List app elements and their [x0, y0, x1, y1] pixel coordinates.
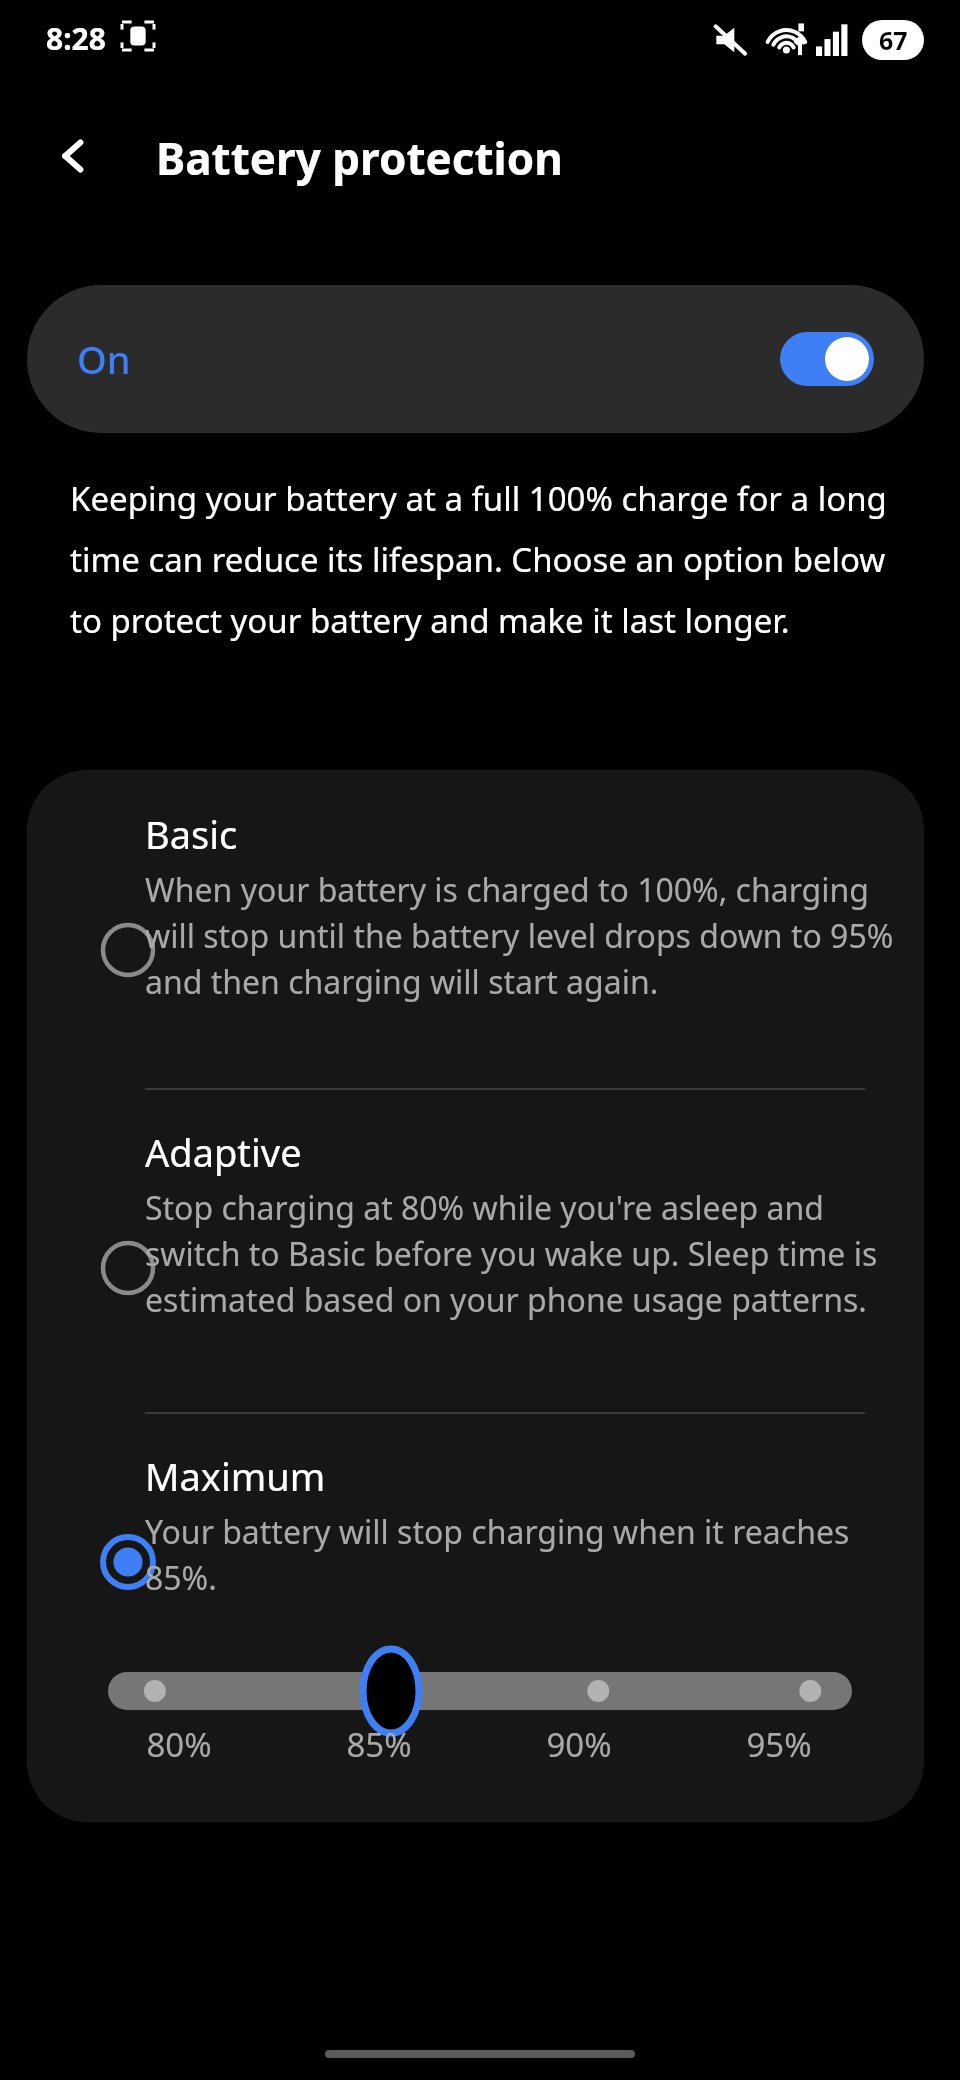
staticText: Basic: [145, 808, 238, 860]
staticText: 85%: [279, 1722, 479, 1767]
staticText: Stop charging at 80% while you're asleep…: [145, 1186, 905, 1321]
staticText: Your battery will stop charging when it …: [145, 1510, 905, 1599]
button[interactable]: [27, 1118, 924, 1408]
staticText: 8:28: [46, 18, 106, 59]
staticText: When your battery is charged to 100%, ch…: [145, 868, 905, 1003]
staticText: 80%: [79, 1722, 279, 1767]
button[interactable]: On: [27, 285, 924, 433]
staticText: Adaptive: [145, 1126, 302, 1178]
button[interactable]: [76, 898, 180, 1002]
staticText: Keeping your battery at a full 100% char…: [70, 476, 900, 643]
button[interactable]: [76, 1216, 180, 1320]
button[interactable]: [27, 800, 924, 1090]
staticText: 95%: [679, 1722, 879, 1767]
staticText: 90%: [479, 1722, 679, 1767]
button[interactable]: [76, 1510, 180, 1614]
button[interactable]: Back: [36, 118, 112, 194]
button[interactable]: [108, 1672, 852, 1710]
staticText: 67: [879, 23, 908, 57]
staticText: Maximum: [145, 1450, 326, 1502]
button[interactable]: [27, 1442, 924, 1642]
staticText: Battery protection: [156, 128, 563, 188]
staticText: On: [77, 333, 131, 385]
